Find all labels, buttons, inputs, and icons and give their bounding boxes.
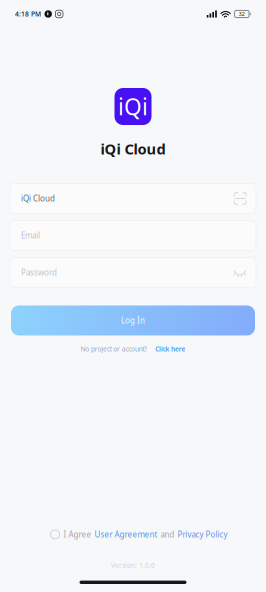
staticText: iQi Cloud [100,139,165,158]
staticText: Version: 1.0.0 [111,561,155,570]
staticText: Click here [155,344,185,353]
staticText: iQi [118,91,148,121]
staticText: and [160,529,174,540]
button[interactable]: User Agreement [94,529,157,540]
button[interactable]: Click here [155,344,185,353]
staticText: iQi Cloud [21,193,55,204]
staticText: Log In [121,315,145,326]
staticText: Privacy Policy [177,529,227,540]
button[interactable]: Log In [11,305,255,335]
staticText: I Agree [63,529,91,540]
button[interactable]: Privacy Policy [177,529,227,540]
staticText: 4:18 PM [15,10,41,18]
staticText: Password [21,267,57,278]
staticText: User Agreement [94,529,157,540]
staticText: 32 [239,10,245,18]
staticText: No project or account? [80,344,147,353]
staticText: Email [21,230,40,241]
button[interactable]: I Agree [50,530,59,539]
